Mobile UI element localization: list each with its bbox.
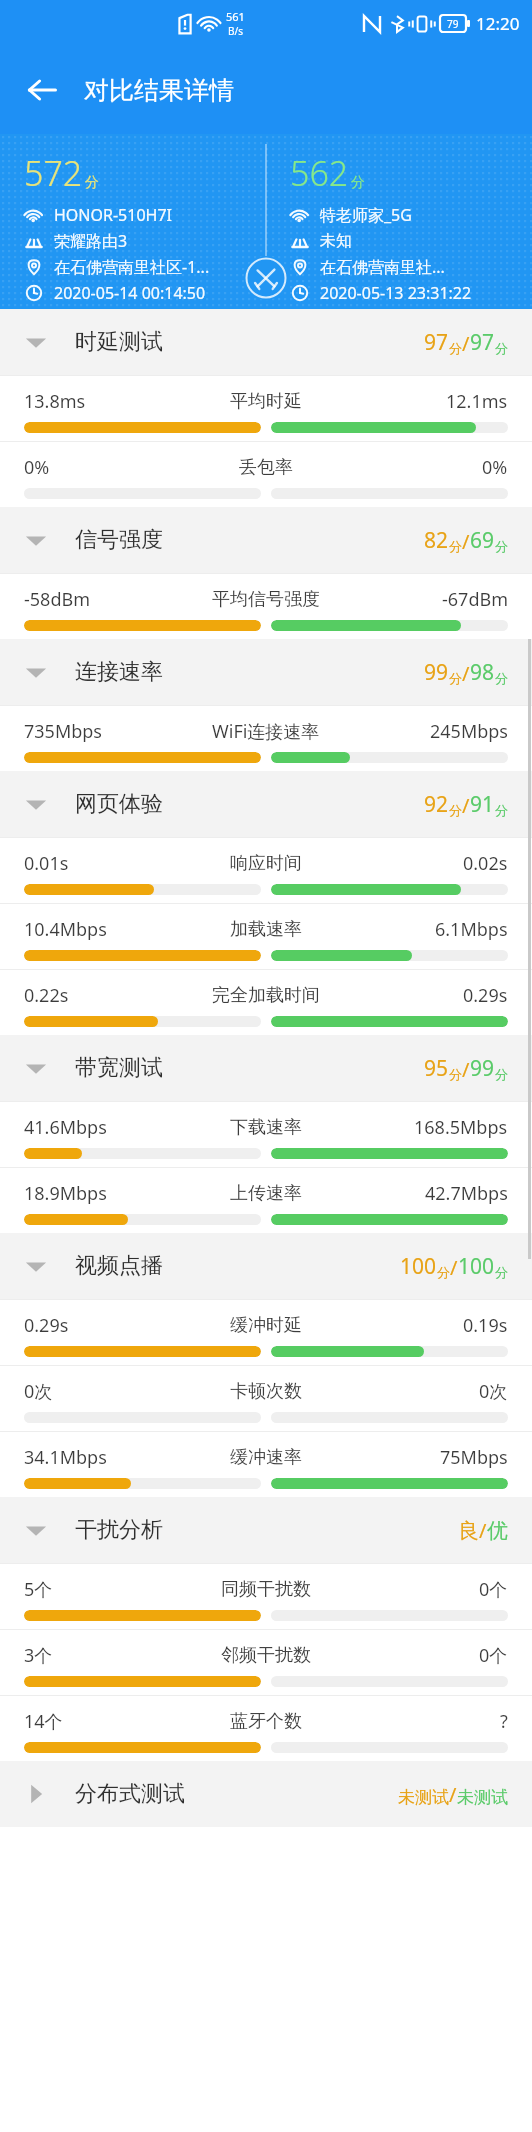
staticText: 网页体验 <box>75 790 163 818</box>
button[interactable]: 信号强度 <box>0 507 532 573</box>
staticText: 562 <box>290 150 349 196</box>
staticText: 视频点播 <box>75 1252 163 1280</box>
staticText: / <box>462 792 470 819</box>
staticText: 荣耀路由3 <box>54 230 128 252</box>
staticText: 735Mbps <box>24 719 102 744</box>
staticText: 0次 <box>479 1379 508 1404</box>
button[interactable]: Compare <box>244 256 288 300</box>
button[interactable]: 14个 <box>0 1695 532 1761</box>
staticText: 99 <box>424 658 449 687</box>
staticText: 0.29s <box>24 1313 69 1338</box>
staticText: 42.7Mbps <box>425 1181 508 1206</box>
button[interactable]: 5个 <box>0 1563 532 1629</box>
staticText: 0.22s <box>24 983 69 1008</box>
button[interactable]: 0.01s <box>0 837 532 903</box>
staticText: 14个 <box>24 1709 63 1734</box>
button[interactable]: 时延测试 <box>0 309 532 375</box>
staticText: 92 <box>424 790 449 819</box>
staticText: / <box>449 1781 457 1808</box>
staticText: 下载速率 <box>230 1116 302 1139</box>
staticText: 0% <box>24 455 50 480</box>
staticText: 97 <box>424 328 449 357</box>
staticText: 同频干扰数 <box>221 1578 311 1601</box>
button[interactable]: 0% <box>0 441 532 507</box>
button[interactable]: 3个 <box>0 1629 532 1695</box>
staticText: 未知 <box>320 231 352 251</box>
staticText: 12:20 <box>476 12 520 35</box>
button[interactable]: 0次 <box>0 1365 532 1431</box>
staticText: 分布式测试 <box>75 1780 185 1808</box>
staticText: 100 <box>400 1252 437 1281</box>
staticText: 分 <box>495 538 508 554</box>
staticText: 0% <box>482 455 508 480</box>
staticText: 时延测试 <box>75 328 163 356</box>
button[interactable]: 13.8ms <box>0 375 532 441</box>
staticText: 蓝牙个数 <box>230 1710 302 1733</box>
staticText: 缓冲速率 <box>230 1446 302 1469</box>
staticText: 6.1Mbps <box>435 917 508 942</box>
button[interactable]: 带宽测试 <box>0 1035 532 1101</box>
staticText: 0.02s <box>463 851 508 876</box>
staticText: 95 <box>424 1054 449 1083</box>
button[interactable]: 0.22s <box>0 969 532 1035</box>
staticText: / <box>462 330 470 357</box>
staticText: 信号强度 <box>75 526 163 554</box>
staticText: 干扰分析 <box>75 1516 163 1544</box>
staticText: / <box>462 1056 470 1083</box>
button[interactable]: 41.6Mbps <box>0 1101 532 1167</box>
staticText: 分 <box>495 1066 508 1082</box>
button[interactable]: 连接速率 <box>0 639 532 705</box>
staticText: 分 <box>449 340 462 356</box>
staticText: 12.1ms <box>446 389 508 414</box>
button[interactable]: Back <box>16 64 68 116</box>
button[interactable]: 18.9Mbps <box>0 1167 532 1233</box>
staticText: / <box>462 660 470 687</box>
button[interactable]: 0.29s <box>0 1299 532 1365</box>
staticText: 平均时延 <box>230 390 302 413</box>
staticText: 99 <box>470 1054 495 1083</box>
staticText: 未测试 <box>457 1787 508 1808</box>
staticText: 0.01s <box>24 851 69 876</box>
button[interactable]: 视频点播 <box>0 1233 532 1299</box>
staticText: 分 <box>495 1264 508 1280</box>
staticText: 13.8ms <box>24 389 86 414</box>
staticText: 完全加载时间 <box>212 984 320 1007</box>
staticText: HONOR-510H7I <box>54 204 173 226</box>
staticText: 分 <box>437 1264 450 1280</box>
staticText: 响应时间 <box>230 852 302 875</box>
staticText: 18.9Mbps <box>24 1181 107 1206</box>
staticText: 100 <box>458 1252 495 1281</box>
staticText: 82 <box>424 526 449 555</box>
staticText: 连接速率 <box>75 658 163 686</box>
staticText: 91 <box>470 790 495 819</box>
button[interactable]: 10.4Mbps <box>0 903 532 969</box>
staticText: / <box>450 1254 458 1281</box>
staticText: 34.1Mbps <box>24 1445 107 1470</box>
staticText: 缓冲时延 <box>230 1314 302 1337</box>
staticText: 0.19s <box>463 1313 508 1338</box>
staticText: 10.4Mbps <box>24 917 107 942</box>
staticText: 分 <box>85 174 99 192</box>
staticText: 特老师家_5G <box>320 204 412 226</box>
button[interactable]: 34.1Mbps <box>0 1431 532 1497</box>
staticText: 0个 <box>479 1577 508 1602</box>
button[interactable]: 干扰分析 <box>0 1497 532 1563</box>
staticText: 3个 <box>24 1643 53 1668</box>
staticText: 优 <box>487 1518 508 1544</box>
staticText: 分 <box>351 174 365 192</box>
staticText: 分 <box>449 802 462 818</box>
staticText: 572 <box>24 150 83 196</box>
button[interactable]: 735Mbps <box>0 705 532 771</box>
staticText: 0.29s <box>463 983 508 1008</box>
staticText: 在石佛营南里社... <box>320 256 445 278</box>
staticText: 0次 <box>24 1379 53 1404</box>
staticText: -58dBm <box>24 587 90 612</box>
staticText: 分 <box>495 670 508 686</box>
button[interactable]: 分布式测试 <box>0 1761 532 1827</box>
button[interactable]: 网页体验 <box>0 771 532 837</box>
button[interactable]: -58dBm <box>0 573 532 639</box>
staticText: WiFi连接速率 <box>212 719 320 744</box>
staticText: 69 <box>470 526 495 555</box>
staticText: 分 <box>495 802 508 818</box>
staticText: 2020-05-13 23:31:22 <box>320 282 472 304</box>
